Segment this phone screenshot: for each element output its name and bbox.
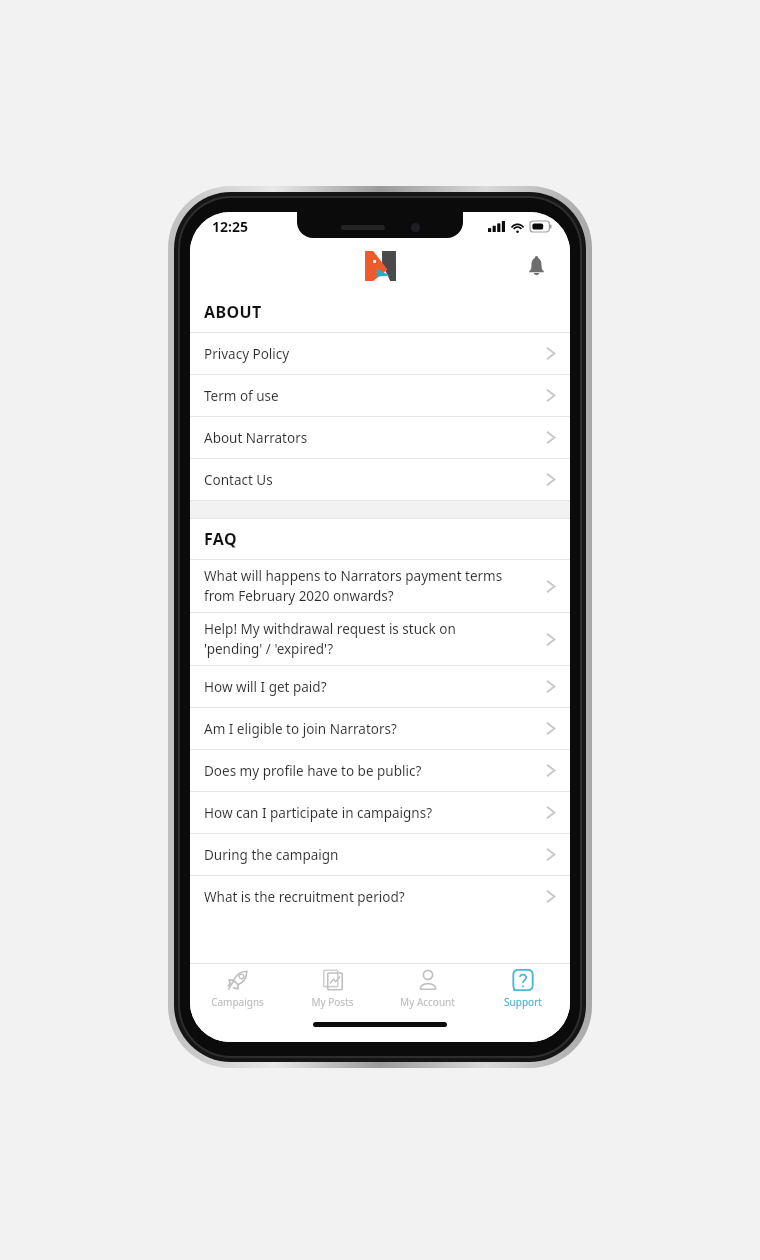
staticText: How will I get paid? bbox=[204, 678, 545, 696]
button[interactable]: Does my profile have to be public? bbox=[190, 750, 570, 791]
button[interactable]: My Account bbox=[380, 964, 475, 1016]
button[interactable]: Campaigns bbox=[190, 964, 285, 1016]
staticText: Contact Us bbox=[204, 471, 545, 489]
button[interactable]: Notifications bbox=[518, 248, 554, 284]
button[interactable]: During the campaign bbox=[190, 834, 570, 875]
staticText: How can I participate in campaigns? bbox=[204, 804, 545, 822]
button[interactable]: Support bbox=[475, 964, 570, 1016]
staticText: from February 2020 onwards? bbox=[204, 587, 394, 605]
staticText: Term of use bbox=[204, 387, 545, 405]
staticText: What will happens to Narrators payment t… bbox=[204, 567, 503, 585]
staticText: 'pending' / 'expired'? bbox=[204, 640, 334, 658]
staticText: During the campaign bbox=[204, 846, 545, 864]
button[interactable]: Help! My withdrawal request is stuck on bbox=[190, 613, 570, 665]
staticText: Help! My withdrawal request is stuck on bbox=[204, 620, 456, 638]
staticText: Am I eligible to join Narrators? bbox=[204, 720, 545, 738]
staticText: My Posts bbox=[311, 995, 354, 1009]
staticText: Does my profile have to be public? bbox=[204, 762, 545, 780]
staticText: What is the recruitment period? bbox=[204, 888, 545, 906]
button[interactable]: About Narrators bbox=[190, 417, 570, 458]
button[interactable]: My Posts bbox=[285, 964, 380, 1016]
staticText: Privacy Policy bbox=[204, 345, 545, 363]
button[interactable]: Term of use bbox=[190, 375, 570, 416]
button[interactable]: Privacy Policy bbox=[190, 333, 570, 374]
button[interactable]: How will I get paid? bbox=[190, 666, 570, 707]
button[interactable]: Contact Us bbox=[190, 459, 570, 500]
staticText: ABOUT bbox=[204, 301, 262, 323]
staticText: About Narrators bbox=[204, 429, 545, 447]
button[interactable]: Am I eligible to join Narrators? bbox=[190, 708, 570, 749]
staticText: Campaigns bbox=[211, 995, 264, 1009]
button[interactable]: Narrators home bbox=[358, 244, 402, 288]
staticText: 12:25 bbox=[212, 217, 248, 236]
button[interactable]: What is the recruitment period? bbox=[190, 876, 570, 917]
button[interactable]: How can I participate in campaigns? bbox=[190, 792, 570, 833]
button[interactable]: What will happens to Narrators payment t… bbox=[190, 560, 570, 612]
staticText: Support bbox=[504, 995, 542, 1009]
staticText: FAQ bbox=[204, 528, 238, 550]
staticText: My Account bbox=[400, 995, 455, 1009]
